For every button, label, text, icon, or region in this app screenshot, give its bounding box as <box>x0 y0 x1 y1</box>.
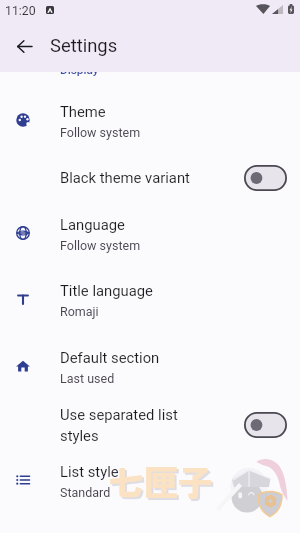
button[interactable]: Back <box>6 28 42 64</box>
staticText: 11:20 <box>5 4 36 18</box>
staticText: Follow system <box>60 125 141 140</box>
button[interactable]: Black theme variant <box>0 157 300 191</box>
staticText: Standard <box>60 485 111 500</box>
staticText: Follow system <box>60 238 141 253</box>
staticText: List style <box>60 463 119 480</box>
staticText: Settings <box>50 35 118 57</box>
staticText: Romaji <box>60 304 99 319</box>
staticText: Display <box>60 72 99 77</box>
staticText: Default section <box>60 349 160 366</box>
button[interactable]: Theme <box>0 91 300 139</box>
staticText: Language <box>60 216 125 233</box>
button[interactable]: Use separated list styles <box>0 394 300 444</box>
button[interactable]: Default section <box>0 337 300 385</box>
staticText: Last used <box>60 371 115 386</box>
staticText: 七匣子 <box>111 458 215 508</box>
staticText: 七匣子 <box>109 456 213 506</box>
staticText: Black theme variant <box>60 169 190 186</box>
staticText: Title language <box>60 282 153 299</box>
button[interactable]: Title language <box>0 270 300 318</box>
button[interactable]: Language <box>0 204 300 252</box>
staticText: Theme <box>60 103 106 120</box>
button[interactable]: List style <box>0 451 300 499</box>
staticText: Use separated list styles <box>60 406 178 444</box>
